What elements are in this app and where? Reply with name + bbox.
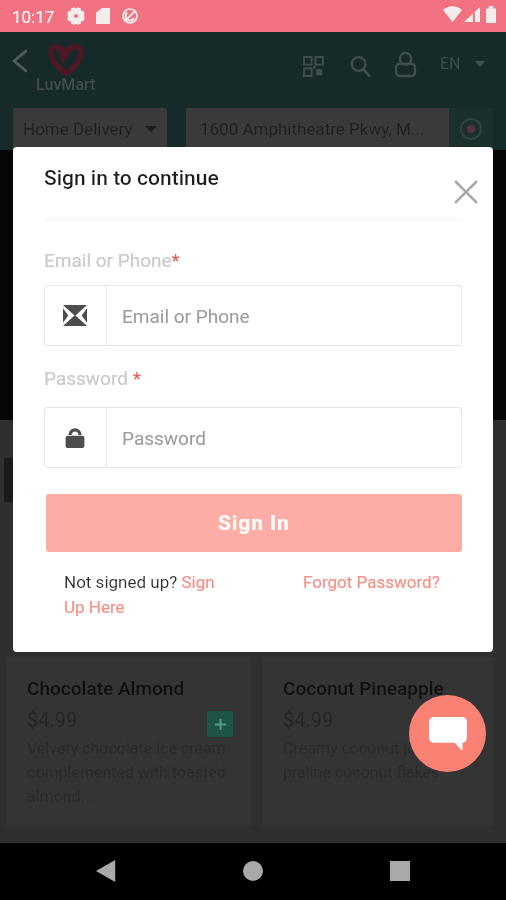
button[interactable]: Password xyxy=(44,407,462,468)
staticText: Password xyxy=(122,427,206,449)
staticText: Sign in to continue xyxy=(44,166,219,191)
button[interactable]: Account xyxy=(388,47,423,82)
button[interactable]: Scan QR code xyxy=(296,49,331,84)
staticText: EN xyxy=(440,54,461,73)
button[interactable]: Search xyxy=(343,49,378,84)
button[interactable]: Home Delivery xyxy=(13,108,167,150)
button[interactable]: Add to cart xyxy=(207,711,233,737)
staticText: 1600 Amphitheatre Pkwy, M... xyxy=(200,119,449,139)
button[interactable]: Back xyxy=(96,860,116,882)
button[interactable]: Not signed up? Sign Up Here xyxy=(64,572,226,617)
button[interactable]: Close xyxy=(445,171,487,213)
staticText: Home Delivery xyxy=(23,119,133,139)
staticText: Chocolate Almond xyxy=(27,677,185,699)
staticText: $4.99 xyxy=(283,708,334,731)
button[interactable]: 1600 Amphitheatre Pkwy, M... xyxy=(186,108,493,150)
button[interactable]: Forgot Password? xyxy=(303,572,440,592)
button[interactable]: Sign In xyxy=(46,494,462,552)
button[interactable]: Chat with us xyxy=(409,695,486,772)
staticText: Creamy coconut ice cream praline coconut… xyxy=(283,739,498,782)
button[interactable]: Home xyxy=(243,861,263,881)
staticText: LuvMart xyxy=(36,75,96,94)
staticText: Password * xyxy=(44,367,141,389)
staticText: Forgot Password? xyxy=(303,572,440,592)
staticText: 10:17 xyxy=(12,7,55,27)
button[interactable]: Use my location xyxy=(449,108,493,150)
button[interactable]: Email or Phone xyxy=(44,285,462,346)
staticText: Email or Phone* xyxy=(44,249,180,271)
button[interactable]: Coconut Pineapple xyxy=(262,657,493,826)
staticText: Coconut Pineapple xyxy=(283,677,444,699)
staticText: $4.99 xyxy=(27,708,78,731)
button[interactable]: Back xyxy=(6,46,36,76)
staticText: Email or Phone xyxy=(122,305,250,327)
button[interactable]: EN xyxy=(432,50,485,77)
staticText: Not signed up? Sign Up Here xyxy=(64,572,226,617)
staticText: Sign In xyxy=(218,511,290,536)
button[interactable]: Chocolate Almond xyxy=(6,657,251,826)
